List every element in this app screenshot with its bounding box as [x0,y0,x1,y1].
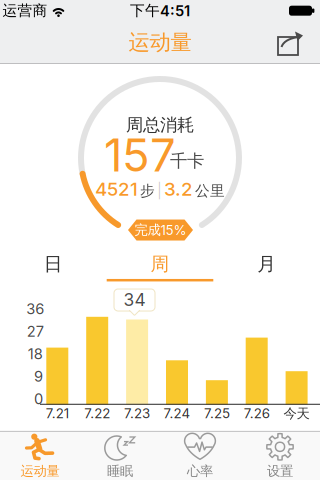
staticText: 4521 [95,178,138,200]
button[interactable]: 睡眠 [80,432,160,480]
button[interactable]: 运动量 [0,432,80,480]
staticText: 运营商 [2,1,47,19]
staticText: 7.26 [244,406,270,421]
staticText: 7.22 [84,406,110,421]
staticText: 完成15% [134,222,186,238]
button[interactable]: 日 [0,247,106,281]
staticText: 日 [44,252,63,275]
staticText: 设置 [267,463,293,479]
staticText: 9 [34,368,43,385]
staticText: 3.2 [164,178,193,200]
staticText: 7.21 [46,406,69,421]
staticText: 运动量 [20,463,59,479]
button[interactable]: 月 [214,247,320,281]
staticText: 0 [34,390,43,408]
staticText: 27 [27,323,44,340]
staticText: 周 [150,252,169,275]
staticText: 今天 [284,405,310,422]
staticText: 睡眠 [107,463,133,479]
staticText: 7.25 [204,406,230,421]
staticText: 周总消耗 [126,114,194,136]
staticText: 36 [26,300,44,318]
staticText: 7.24 [163,406,190,421]
staticText: 月 [257,252,276,275]
button[interactable]: 周 [107,247,213,281]
staticText: 34 [123,290,145,310]
staticText: 公里 [195,182,225,200]
staticText: 下午4:51 [130,1,190,19]
staticText: 心率 [187,463,213,479]
button[interactable] [268,22,312,66]
staticText: 157 [104,128,176,182]
staticText: 运动量 [128,29,191,56]
staticText: 18 [28,345,43,363]
button[interactable]: 心率 [160,432,240,480]
staticText: | [157,182,162,199]
button[interactable]: 设置 [240,432,320,480]
staticText: 7.23 [124,406,150,421]
staticText: 千卡 [170,150,204,172]
staticText: 步 [140,182,155,200]
